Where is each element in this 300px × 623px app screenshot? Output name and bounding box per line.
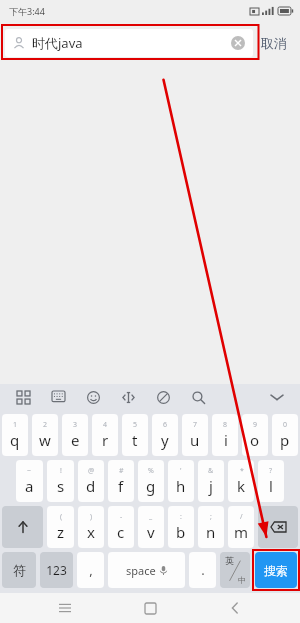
button[interactable]: 符 xyxy=(2,552,36,588)
staticText: 英 xyxy=(225,555,234,566)
staticText: f xyxy=(118,476,124,496)
staticText: 2 xyxy=(43,420,48,430)
staticText: j xyxy=(209,476,213,496)
staticText: p xyxy=(280,430,290,450)
staticText: % xyxy=(148,466,154,476)
staticText: t xyxy=(132,430,138,450)
button[interactable]: 3 xyxy=(62,414,88,456)
staticText: b xyxy=(176,522,186,542)
staticText: e xyxy=(71,430,80,450)
button[interactable]: 4 xyxy=(92,414,118,456)
staticText: 3 xyxy=(73,420,78,430)
button[interactable]: - xyxy=(108,506,134,548)
button[interactable]: . xyxy=(189,552,216,588)
staticText: h xyxy=(176,476,186,496)
button[interactable]: Text editing xyxy=(116,385,140,409)
staticText: g xyxy=(146,476,156,496)
button[interactable]: Back xyxy=(215,593,255,623)
staticText: s xyxy=(57,476,65,496)
button[interactable]: ) xyxy=(78,506,104,548)
staticText: 6 xyxy=(163,420,168,430)
button[interactable]: 7 xyxy=(182,414,208,456)
button[interactable]: Clear text xyxy=(231,36,245,50)
staticText: 符 xyxy=(13,562,26,578)
button[interactable]: ; xyxy=(198,506,224,548)
button[interactable]: space xyxy=(108,552,185,588)
button[interactable]: 搜索 xyxy=(255,552,297,588)
staticText: 搜索 xyxy=(264,563,288,578)
button[interactable]: ' xyxy=(168,460,194,502)
button[interactable]: Keyboard layout xyxy=(46,385,70,409)
button[interactable]: 取消 xyxy=(253,30,295,56)
button[interactable]: & xyxy=(198,460,224,502)
staticText: n xyxy=(206,522,216,542)
staticText: x xyxy=(87,522,95,542)
button[interactable]: ! xyxy=(47,460,74,502)
staticText: l xyxy=(269,476,273,496)
staticText: y xyxy=(161,430,169,450)
button[interactable]: / xyxy=(228,506,254,548)
staticText: 1 xyxy=(13,420,18,430)
staticText: a xyxy=(25,476,34,496)
staticText: 7 xyxy=(193,420,198,430)
button[interactable]: 时代java xyxy=(5,29,253,57)
staticText: 取消 xyxy=(261,35,287,51)
staticText: ( xyxy=(60,512,63,522)
staticText: i xyxy=(224,430,228,450)
staticText: 0 xyxy=(283,420,288,430)
button[interactable]: _ xyxy=(138,506,164,548)
button[interactable]: Search xyxy=(186,385,210,409)
staticText: 9 xyxy=(253,420,258,430)
button[interactable]: % xyxy=(138,460,164,502)
button[interactable]: , xyxy=(77,552,104,588)
button[interactable]: Clipboard xyxy=(151,385,175,409)
staticText: z xyxy=(57,522,65,542)
button[interactable]: 8 xyxy=(212,414,238,456)
staticText: & xyxy=(208,466,214,476)
staticText: d xyxy=(86,476,96,496)
button[interactable]: Recent apps xyxy=(45,593,85,623)
button[interactable]: Switch English Chinese xyxy=(220,552,250,588)
button[interactable]: 0 xyxy=(272,414,298,456)
staticText: : xyxy=(180,512,182,522)
button[interactable]: 123 xyxy=(40,552,73,588)
button[interactable]: 6 xyxy=(152,414,178,456)
staticText: ) xyxy=(90,512,93,522)
button[interactable]: * xyxy=(228,460,254,502)
button[interactable]: ? xyxy=(258,460,284,502)
button[interactable]: 5 xyxy=(122,414,148,456)
button[interactable]: @ xyxy=(78,460,104,502)
staticText: - xyxy=(120,512,123,522)
button[interactable]: # xyxy=(108,460,134,502)
button[interactable]: Home xyxy=(130,593,170,623)
staticText: * xyxy=(240,466,244,476)
staticText: ! xyxy=(60,466,62,476)
staticText: v xyxy=(147,522,155,542)
staticText: m xyxy=(234,522,249,542)
staticText: q xyxy=(10,430,20,450)
button[interactable]: : xyxy=(168,506,194,548)
staticText: ' xyxy=(180,466,182,476)
button[interactable]: Hide keyboard xyxy=(265,385,289,409)
button[interactable]: ~ xyxy=(16,460,43,502)
button[interactable]: Shift xyxy=(2,506,43,548)
staticText: 时代java xyxy=(32,34,83,52)
button[interactable]: 2 xyxy=(32,414,58,456)
staticText: , xyxy=(89,561,93,579)
staticText: c xyxy=(117,522,125,542)
staticText: w xyxy=(39,430,51,450)
staticText: 123 xyxy=(46,562,67,578)
staticText: _ xyxy=(149,512,153,522)
staticText: 4 xyxy=(103,420,108,430)
button[interactable]: 9 xyxy=(242,414,268,456)
button[interactable]: Emoji xyxy=(81,385,105,409)
staticText: 5 xyxy=(133,420,138,430)
staticText: / xyxy=(240,512,243,522)
button[interactable]: Backspace xyxy=(258,506,298,548)
button[interactable]: 1 xyxy=(2,414,28,456)
button[interactable]: Apps xyxy=(11,385,35,409)
button[interactable]: ( xyxy=(47,506,74,548)
staticText: k xyxy=(237,476,246,496)
staticText: ? xyxy=(269,466,273,476)
staticText: 中 xyxy=(238,575,246,585)
